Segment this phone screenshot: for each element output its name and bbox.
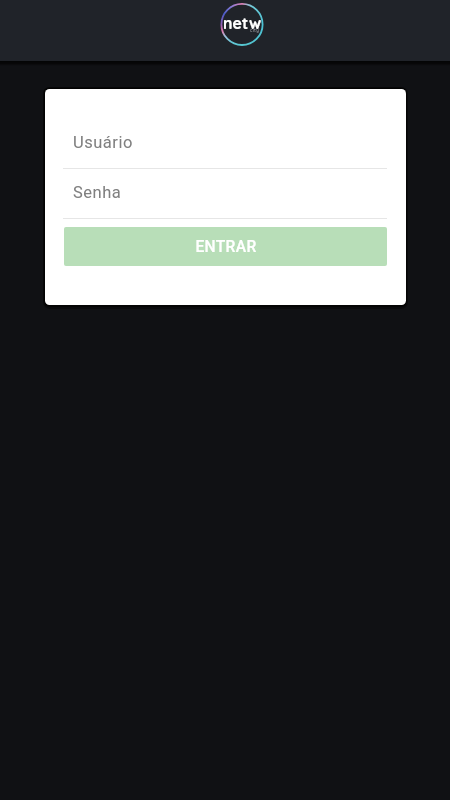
staticText: Senha bbox=[73, 183, 122, 202]
staticText: Usuário bbox=[73, 133, 133, 152]
button[interactable]: ENTRAR bbox=[64, 227, 387, 266]
button[interactable]: Senha bbox=[63, 166, 387, 218]
staticText: netw bbox=[223, 13, 262, 33]
other: netw city logo bbox=[220, 2, 264, 46]
button[interactable]: Usuário bbox=[63, 116, 387, 168]
staticText: city bbox=[250, 27, 260, 33]
staticText: ENTRAR bbox=[195, 238, 257, 256]
